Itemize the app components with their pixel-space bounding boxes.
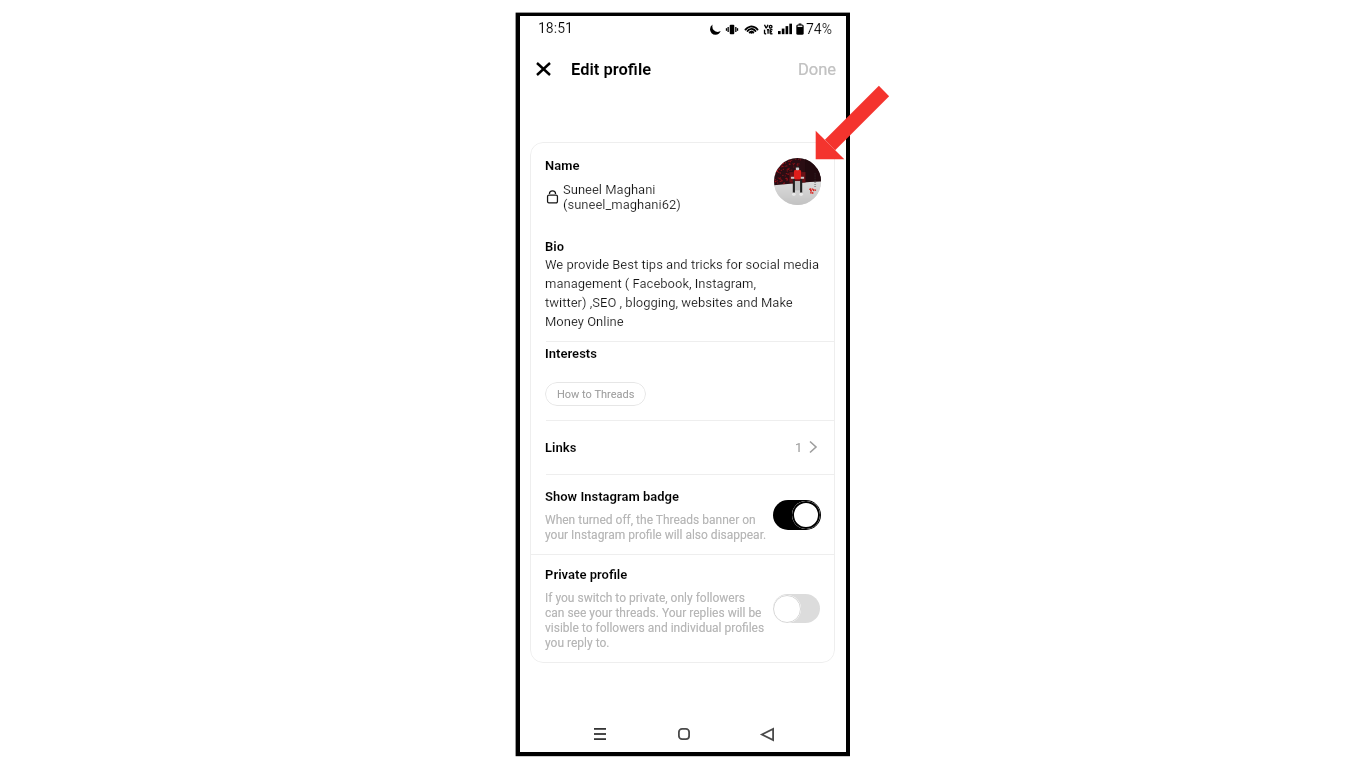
staticText: 1 — [795, 440, 803, 455]
staticText: 74% — [806, 21, 832, 37]
staticText: Suneel Maghani — [563, 182, 656, 197]
button[interactable]: Home — [670, 720, 698, 748]
button[interactable]: Recent apps — [586, 720, 614, 748]
button[interactable]: Close — [529, 55, 557, 83]
staticText: Done — [798, 60, 837, 79]
button[interactable]: How to Threads — [545, 382, 646, 406]
staticText: If you switch to private, only followers… — [545, 591, 765, 650]
button[interactable]: Back — [753, 720, 781, 748]
staticText: Edit profile — [571, 60, 652, 79]
staticText: How to Threads — [557, 388, 635, 401]
button[interactable]: Links — [530, 421, 835, 474]
staticText: Links — [545, 440, 577, 455]
button[interactable]: Private profile — [530, 555, 835, 662]
staticText: 18:51 — [538, 20, 573, 36]
staticText: Private profile — [545, 567, 628, 582]
button[interactable]: Done — [797, 60, 838, 79]
button[interactable]: Show Instagram badge — [530, 475, 835, 554]
staticText: (suneel_maghani62) — [563, 197, 681, 212]
button[interactable]: Bio — [530, 232, 835, 338]
button[interactable]: Name — [530, 148, 835, 228]
staticText: When turned off, the Threads banner on y… — [545, 513, 767, 541]
button[interactable]: Show Instagram badge toggle — [773, 500, 821, 530]
button[interactable]: Edit profile — [571, 60, 652, 79]
staticText: Show Instagram badge — [545, 489, 680, 504]
button[interactable]: Change profile picture — [774, 158, 821, 205]
staticText: We provide Best tips and tricks for soci… — [545, 257, 823, 329]
staticText: Bio — [545, 239, 565, 254]
staticText: Interests — [545, 346, 597, 361]
staticText: Name — [545, 158, 580, 173]
button[interactable]: Private profile toggle — [773, 594, 820, 623]
